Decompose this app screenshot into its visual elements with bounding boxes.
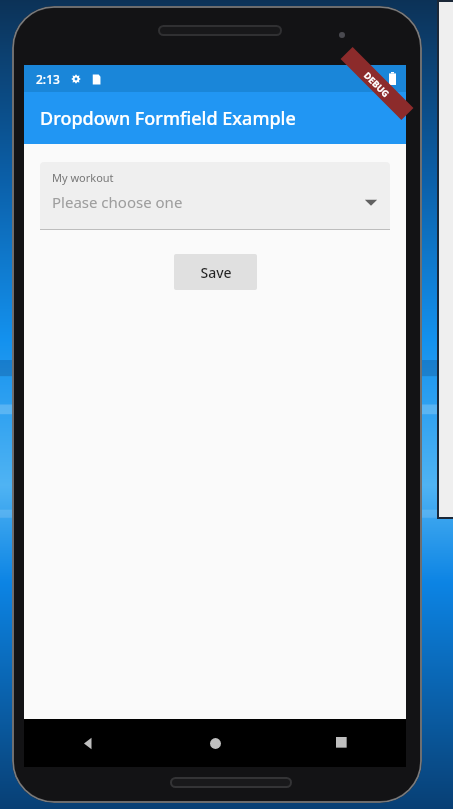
button[interactable]: Save — [174, 254, 257, 290]
other: Open dropdown — [364, 195, 378, 209]
staticText: 2:13 — [36, 71, 60, 87]
staticText: DEBUG — [362, 69, 392, 99]
button[interactable]: My workout — [40, 162, 390, 230]
button[interactable]: Back — [24, 719, 152, 767]
staticText: Dropdown Formfield Example — [40, 106, 296, 131]
button[interactable]: Recent apps — [279, 719, 406, 767]
staticText: Save — [200, 263, 232, 282]
staticText: Please choose one — [52, 192, 364, 212]
staticText: My workout — [52, 170, 114, 185]
button[interactable]: Home — [152, 719, 279, 767]
